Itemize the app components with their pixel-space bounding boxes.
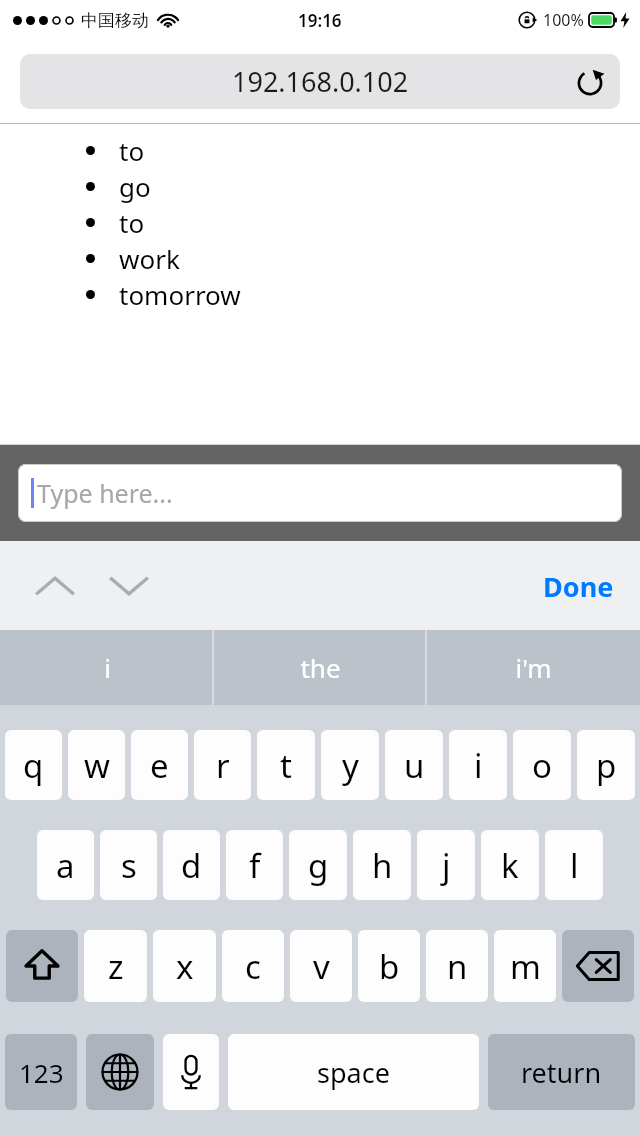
button[interactable]: c [222,930,284,1002]
button[interactable]: Next field [98,558,160,614]
staticText: m [510,944,541,989]
staticText: space [317,1054,390,1091]
button[interactable]: k [481,830,539,900]
button[interactable]: r [194,730,251,800]
staticText: s [121,843,137,888]
button[interactable]: the [214,630,427,705]
staticText: z [108,944,124,989]
staticText: c [245,944,261,989]
staticText: i [104,650,111,685]
staticText: g [308,843,329,888]
button[interactable]: q [5,730,62,800]
button[interactable]: t [257,730,315,800]
staticText: go [119,169,151,204]
staticText: Type here... [37,476,173,510]
button[interactable]: Backspace [562,930,634,1002]
button[interactable]: e [131,730,188,800]
staticText: b [379,944,400,989]
staticText: r [216,743,230,788]
staticText: d [181,843,202,888]
staticText: e [150,743,169,788]
button[interactable]: 192.168.0.102 [20,54,620,109]
button[interactable]: m [494,930,556,1002]
button[interactable]: Reload [568,60,612,104]
staticText: x [176,944,194,989]
button[interactable]: Type here... [18,464,622,522]
button[interactable]: 123 [5,1034,77,1110]
staticText: v [313,944,330,989]
staticText: u [404,743,425,788]
staticText: to [119,205,145,240]
button[interactable]: w [68,730,125,800]
button[interactable]: i [0,630,214,705]
button[interactable]: h [353,830,411,900]
button[interactable]: j [417,830,475,900]
staticText: 192.168.0.102 [232,63,409,100]
button[interactable]: l [545,830,603,900]
button[interactable]: g [289,830,347,900]
staticText: return [521,1054,602,1091]
staticText: h [372,843,393,888]
button[interactable]: d [163,830,220,900]
button[interactable]: z [84,930,147,1002]
staticText: 19:16 [298,9,342,32]
staticText: j [442,843,451,888]
staticText: i'm [515,650,552,685]
staticText: 中国移动 [81,10,149,31]
button[interactable]: b [358,930,420,1002]
staticText: work [119,241,180,276]
staticText: n [447,944,468,989]
staticText: k [501,843,519,888]
button[interactable]: i [449,730,507,800]
button[interactable]: Dictation [163,1034,219,1110]
button[interactable]: Change keyboard [86,1034,154,1110]
staticText: 123 [19,1055,64,1090]
staticText: i [474,743,483,788]
button[interactable]: Previous field [24,558,86,614]
staticText: to [119,133,145,168]
button[interactable]: f [226,830,283,900]
button[interactable]: y [321,730,379,800]
button[interactable]: a [37,830,94,900]
button[interactable]: o [513,730,571,800]
staticText: f [249,843,261,888]
button[interactable]: v [290,930,352,1002]
staticText: 100% [543,9,584,31]
staticText: w [84,743,110,788]
button[interactable]: u [385,730,443,800]
staticText: t [280,743,292,788]
button[interactable]: return [488,1034,635,1110]
button[interactable]: Done [529,555,628,617]
button[interactable]: n [426,930,488,1002]
button[interactable]: p [577,730,635,800]
button[interactable]: i'm [427,630,640,705]
staticText: l [570,843,579,888]
button[interactable]: x [153,930,216,1002]
staticText: the [300,650,341,685]
staticText: o [532,743,552,788]
button[interactable]: s [100,830,157,900]
staticText: q [23,743,44,788]
button[interactable]: Shift [6,930,78,1002]
button[interactable]: space [228,1034,479,1110]
staticText: tomorrow [119,277,241,312]
staticText: p [596,743,617,788]
staticText: a [56,843,75,888]
staticText: Done [543,568,614,605]
staticText: y [342,743,359,788]
